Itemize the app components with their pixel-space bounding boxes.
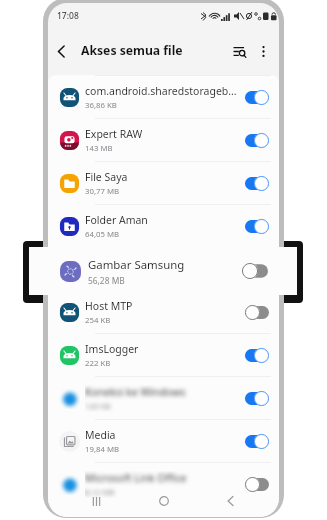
staticText: Host MTP <box>85 299 133 313</box>
button[interactable]: Microsoft Link Office <box>48 463 279 506</box>
staticText: 222 KB <box>85 358 111 369</box>
staticText: Gambar Samsung <box>85 256 174 270</box>
staticText: Akses semua file <box>81 42 183 59</box>
staticText: Microsoft Link Office <box>85 471 187 485</box>
button[interactable]: Toggle on <box>245 219 269 234</box>
button[interactable]: Folder Aman <box>48 205 279 248</box>
staticText: Expert RAW <box>85 127 143 141</box>
staticText: ImsLogger <box>85 342 139 356</box>
staticText: 17:08 <box>57 10 79 22</box>
button[interactable]: Host MTP <box>48 291 279 334</box>
button[interactable]: Toggle on <box>245 391 269 406</box>
button[interactable]: Toggle on <box>245 90 269 105</box>
staticText: com.android.sharedstorageba… <box>85 84 240 98</box>
staticText: 19,84 MB <box>85 444 120 455</box>
button[interactable]: Recents <box>63 488 130 514</box>
staticText: Media <box>85 428 116 442</box>
button[interactable]: File Saya <box>48 162 279 205</box>
button[interactable]: Toggle off <box>242 263 268 279</box>
button[interactable]: Media <box>48 420 279 463</box>
staticText: 120 KB <box>85 401 111 412</box>
staticText: File Saya <box>85 170 128 184</box>
button[interactable]: Gambar Samsung <box>29 247 297 295</box>
button[interactable]: Toggle on <box>245 434 269 449</box>
staticText: Gambar Samsung <box>88 257 185 273</box>
button[interactable]: More options <box>252 40 274 62</box>
button[interactable]: Toggle off <box>245 262 269 277</box>
button[interactable]: Home <box>130 488 197 514</box>
button[interactable]: Search in list <box>227 39 251 63</box>
staticText: 30,77 MB <box>85 186 120 197</box>
button[interactable]: Toggle on <box>245 348 269 363</box>
button[interactable]: Toggle on <box>245 176 269 191</box>
button[interactable]: Expert RAW <box>48 119 279 162</box>
button[interactable]: Toggle off <box>245 305 269 320</box>
staticText: 64,05 MB <box>85 229 120 240</box>
button[interactable]: Back <box>50 40 72 62</box>
staticText: 56,28 MB <box>88 275 125 286</box>
staticText: 36,86 KB <box>85 100 117 111</box>
staticText: 143 MB <box>85 143 113 154</box>
button[interactable]: Back <box>197 488 264 514</box>
staticText: 56,28 MB <box>85 272 120 283</box>
staticText: Folder Aman <box>85 213 148 227</box>
button[interactable]: ImsLogger <box>48 334 279 377</box>
button[interactable]: Toggle off <box>245 477 269 492</box>
button[interactable]: Koneksi ke Windows <box>48 377 279 420</box>
staticText: 8,12 MB <box>85 487 115 498</box>
button[interactable]: com.android.sharedstorageba… <box>48 76 279 119</box>
button[interactable]: Toggle on <box>245 133 269 148</box>
staticText: Koneksi ke Windows <box>85 385 186 399</box>
staticText: 254 KB <box>85 315 111 326</box>
button[interactable]: Gambar Samsung <box>48 248 279 291</box>
